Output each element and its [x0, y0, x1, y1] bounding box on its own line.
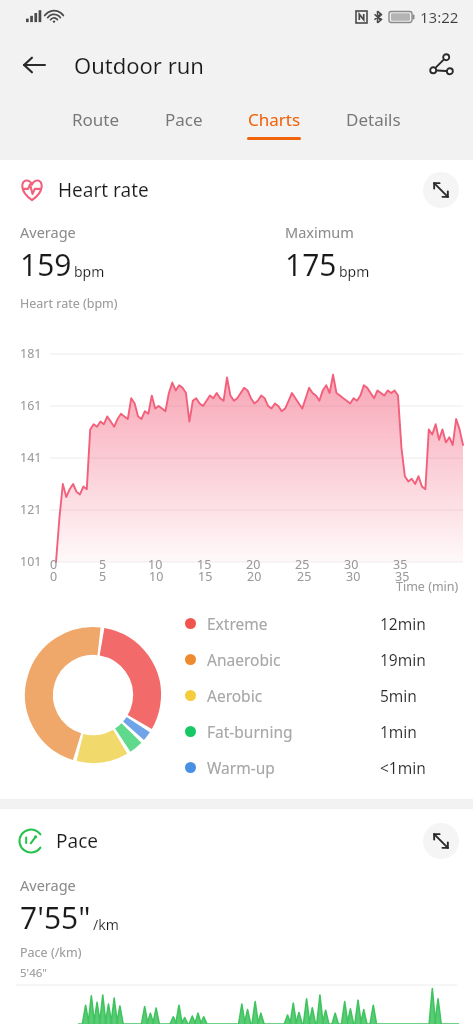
button[interactable]: Aerobic [185, 677, 455, 713]
button[interactable]: Expand chart [423, 172, 459, 208]
staticText: Time (min) [396, 578, 459, 595]
staticText: 12min [380, 613, 426, 634]
staticText: Outdoor run [74, 50, 204, 80]
staticText: 101 [20, 553, 42, 570]
button[interactable]: Share [417, 41, 465, 89]
button[interactable]: Charts [245, 104, 303, 144]
staticText: Extreme [207, 613, 268, 634]
button[interactable]: Back [10, 41, 58, 89]
staticText: 20 [247, 568, 262, 585]
staticText: 121 [20, 501, 42, 518]
staticText: 20 [246, 556, 261, 573]
staticText: bpm [339, 262, 370, 281]
button[interactable]: Details [344, 104, 403, 144]
staticText: 7'55" [20, 897, 91, 938]
staticText: 175 [285, 244, 337, 285]
staticText: 10 [149, 568, 164, 585]
staticText: /km [93, 915, 119, 934]
staticText: 15 [198, 568, 213, 585]
staticText: 25 [295, 556, 310, 573]
button[interactable]: Expand chart [423, 823, 459, 859]
staticText: 141 [20, 449, 42, 466]
staticText: 159 [20, 244, 72, 285]
staticText: Pace (/km) [20, 944, 82, 961]
staticText: 30 [346, 568, 361, 585]
staticText: Maximum [285, 222, 354, 242]
staticText: 19min [380, 649, 426, 670]
staticText: <1min [380, 757, 426, 778]
staticText: 1min [380, 721, 417, 742]
staticText: Details [346, 108, 401, 131]
staticText: Average [20, 875, 76, 895]
staticText: Warm-up [207, 757, 275, 778]
staticText: 35 [395, 568, 410, 585]
button[interactable]: Fat-burning [185, 713, 455, 749]
button[interactable]: Route [70, 104, 122, 144]
staticText: Charts [248, 108, 301, 131]
staticText: 161 [20, 397, 42, 414]
staticText: Pace [56, 828, 98, 854]
staticText: Aerobic [207, 685, 263, 706]
staticText: Fat-burning [207, 721, 293, 742]
staticText: 15 [197, 556, 212, 573]
staticText: 0 [50, 568, 58, 585]
staticText: 13:22 [420, 7, 459, 27]
staticText: Average [20, 222, 76, 242]
staticText: Pace [165, 108, 203, 131]
staticText: 0 [50, 556, 58, 573]
button[interactable]: Extreme [185, 605, 455, 641]
staticText: 181 [20, 345, 42, 362]
staticText: Heart rate (bpm) [20, 295, 118, 312]
staticText: 5'46" [20, 965, 48, 981]
staticText: 30 [344, 556, 359, 573]
staticText: 5min [380, 685, 417, 706]
button[interactable]: Pace [163, 104, 205, 144]
staticText: 10 [148, 556, 163, 573]
staticText: 35 [393, 556, 408, 573]
button[interactable]: Anaerobic [185, 641, 455, 677]
staticText: 5 [99, 556, 107, 573]
staticText: 5 [99, 568, 107, 585]
button[interactable]: Warm-up [185, 749, 455, 785]
staticText: 25 [297, 568, 312, 585]
staticText: Heart rate [58, 177, 149, 203]
staticText: bpm [74, 262, 105, 281]
staticText: Anaerobic [207, 649, 281, 670]
staticText: Route [72, 108, 120, 131]
